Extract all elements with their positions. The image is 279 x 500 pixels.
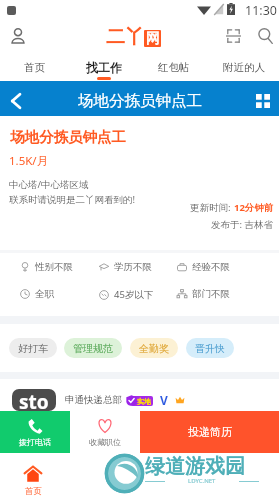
staticText: 实地	[137, 397, 151, 406]
staticText: 场地分拣员钟点工	[78, 91, 202, 111]
button[interactable]: 收藏职位	[70, 411, 140, 453]
button[interactable]: 首页	[24, 466, 42, 497]
staticText: 性别不限	[35, 261, 73, 273]
staticText: 发布于: 吉林省	[211, 218, 274, 231]
button[interactable]: 晋升快	[186, 338, 234, 358]
staticText: 二丫	[106, 25, 144, 49]
staticText: 首页	[24, 61, 45, 74]
staticText: 经验不限	[192, 261, 230, 273]
button[interactable]: 好打车	[9, 338, 57, 358]
staticText: 拨打电话	[19, 437, 51, 447]
staticText: 中心塔/中心塔区域	[9, 178, 89, 191]
staticText: 红包帖	[158, 61, 190, 74]
staticText: 绿道游戏园	[145, 454, 245, 479]
button[interactable]: sto	[0, 389, 279, 411]
staticText: 45岁以下	[114, 288, 154, 301]
staticText: 找工作	[86, 60, 122, 75]
button[interactable]: 拨打电话	[0, 411, 70, 453]
button[interactable]: 找工作	[69, 53, 139, 81]
staticText: 首页	[25, 486, 42, 497]
staticText: 管理规范	[73, 342, 113, 355]
staticText: 晋升快	[195, 342, 225, 355]
staticText: 收藏职位	[89, 437, 121, 447]
staticText: LDYC.NET	[188, 477, 216, 485]
staticText: 全职	[35, 288, 54, 300]
staticText: 1.5K/月	[9, 153, 49, 169]
button[interactable]: 红包帖	[139, 53, 209, 81]
staticText: 更新时间:	[190, 201, 234, 214]
button[interactable]: Back	[5, 90, 27, 112]
button[interactable]: 附近的人	[209, 53, 279, 81]
staticText: sto	[19, 389, 49, 411]
button[interactable]: 首页	[0, 53, 69, 81]
button[interactable]: 全勤奖	[130, 338, 178, 358]
staticText: 全勤奖	[139, 342, 169, 355]
staticText: 好打车	[18, 342, 48, 355]
button[interactable]: Profile	[10, 28, 26, 44]
staticText: 投递简历	[188, 425, 232, 439]
staticText: 12分钟前	[234, 201, 274, 214]
button[interactable]: 管理规范	[64, 338, 122, 358]
button[interactable]: Grid menu	[256, 94, 270, 108]
staticText: 学历不限	[114, 261, 152, 273]
staticText: 网	[146, 30, 160, 47]
button[interactable]: Search	[258, 28, 273, 44]
staticText: 附近的人	[223, 61, 265, 74]
staticText: 联系时请说明是二丫网看到的!	[9, 193, 136, 206]
staticText: 部门不限	[192, 288, 230, 300]
button[interactable]: Scan	[226, 28, 241, 44]
staticText: 场地分拣员钟点工	[10, 128, 126, 146]
button[interactable]: 投递简历	[140, 411, 279, 453]
staticText: V	[160, 392, 168, 408]
staticText: 申通快递总部	[65, 394, 122, 406]
staticText: 11:30	[245, 2, 277, 19]
